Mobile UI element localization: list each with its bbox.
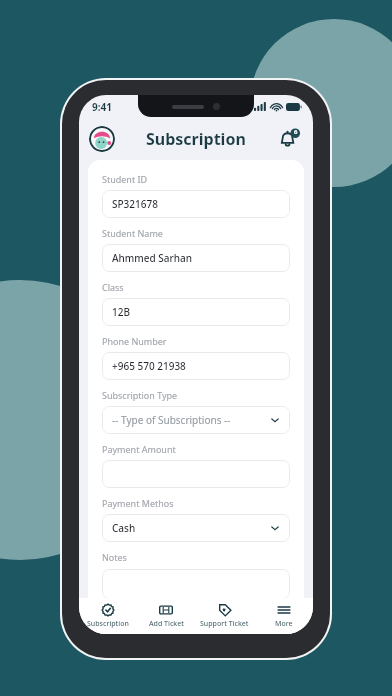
staticText: 9:41 (92, 100, 112, 114)
staticText: Subscription (146, 128, 246, 150)
button[interactable]: Notifications (277, 127, 301, 151)
staticText: Student ID (102, 173, 148, 185)
staticText: Support Ticket (200, 619, 249, 629)
button[interactable]: +965 570 21938 (102, 352, 290, 380)
button[interactable]: Ahmmed Sarhan (102, 244, 290, 272)
staticText: Subscription (87, 619, 129, 629)
staticText: Student Name (102, 227, 163, 239)
staticText: Ahmmed Sarhan (112, 251, 193, 265)
button[interactable]: 12B (102, 298, 290, 326)
staticText: Cash (112, 521, 136, 535)
staticText: Payment Amount (102, 443, 176, 455)
button[interactable]: More (254, 598, 313, 634)
staticText: Payment Methos (102, 497, 174, 509)
staticText: SP321678 (112, 197, 158, 211)
staticText: +965 570 21938 (112, 359, 186, 373)
staticText: Class (102, 281, 124, 293)
button[interactable]: Profile (89, 126, 115, 152)
button[interactable]: Support Ticket (195, 598, 254, 634)
staticText: 12B (112, 305, 130, 319)
staticText: Phone Number (102, 335, 167, 347)
button[interactable]: -- Type of Subscriptions -- (102, 406, 290, 434)
button[interactable]: Subscription (79, 598, 137, 634)
staticText: -- Type of Subscriptions -- (112, 413, 231, 427)
staticText: Notes (102, 551, 127, 563)
staticText: Subscription Type (102, 389, 178, 401)
staticText: Add Ticket (149, 619, 184, 629)
staticText: More (275, 619, 293, 629)
button[interactable]: Add Ticket (137, 598, 195, 634)
button[interactable]: Cash (102, 514, 290, 542)
button[interactable] (102, 460, 290, 488)
staticText: 6 (294, 128, 298, 136)
button[interactable]: SP321678 (102, 190, 290, 218)
button[interactable] (102, 569, 290, 599)
